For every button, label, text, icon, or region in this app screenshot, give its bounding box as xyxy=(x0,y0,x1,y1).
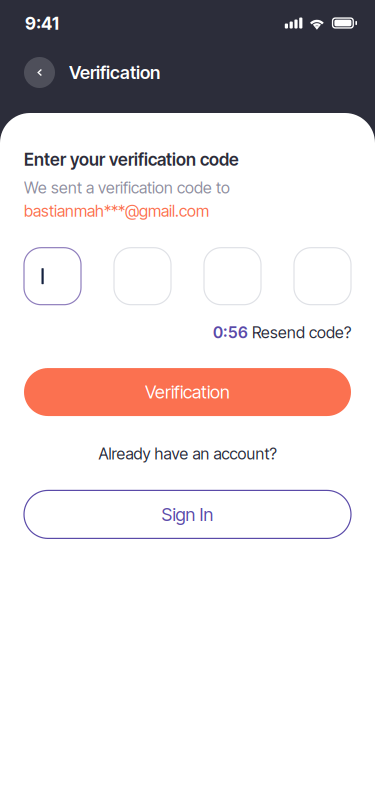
button[interactable]: 0:56 xyxy=(213,323,351,342)
button[interactable]: Verification xyxy=(24,368,351,416)
staticText: bastianmah***@gmail.com xyxy=(24,201,209,221)
button[interactable]: Back xyxy=(24,57,55,88)
staticText: Already have an account? xyxy=(98,444,276,463)
staticText: Verification xyxy=(69,62,160,83)
button[interactable]: Sign In xyxy=(24,490,351,538)
staticText: We sent a verification code to xyxy=(24,178,230,197)
staticText: Enter your verification code xyxy=(24,149,239,170)
staticText: 9:41 xyxy=(25,13,59,34)
staticText: Sign In xyxy=(161,503,213,525)
staticText: Verification xyxy=(145,381,230,403)
staticText: Resend code? xyxy=(252,323,351,342)
staticText: 0:56 xyxy=(213,323,248,342)
